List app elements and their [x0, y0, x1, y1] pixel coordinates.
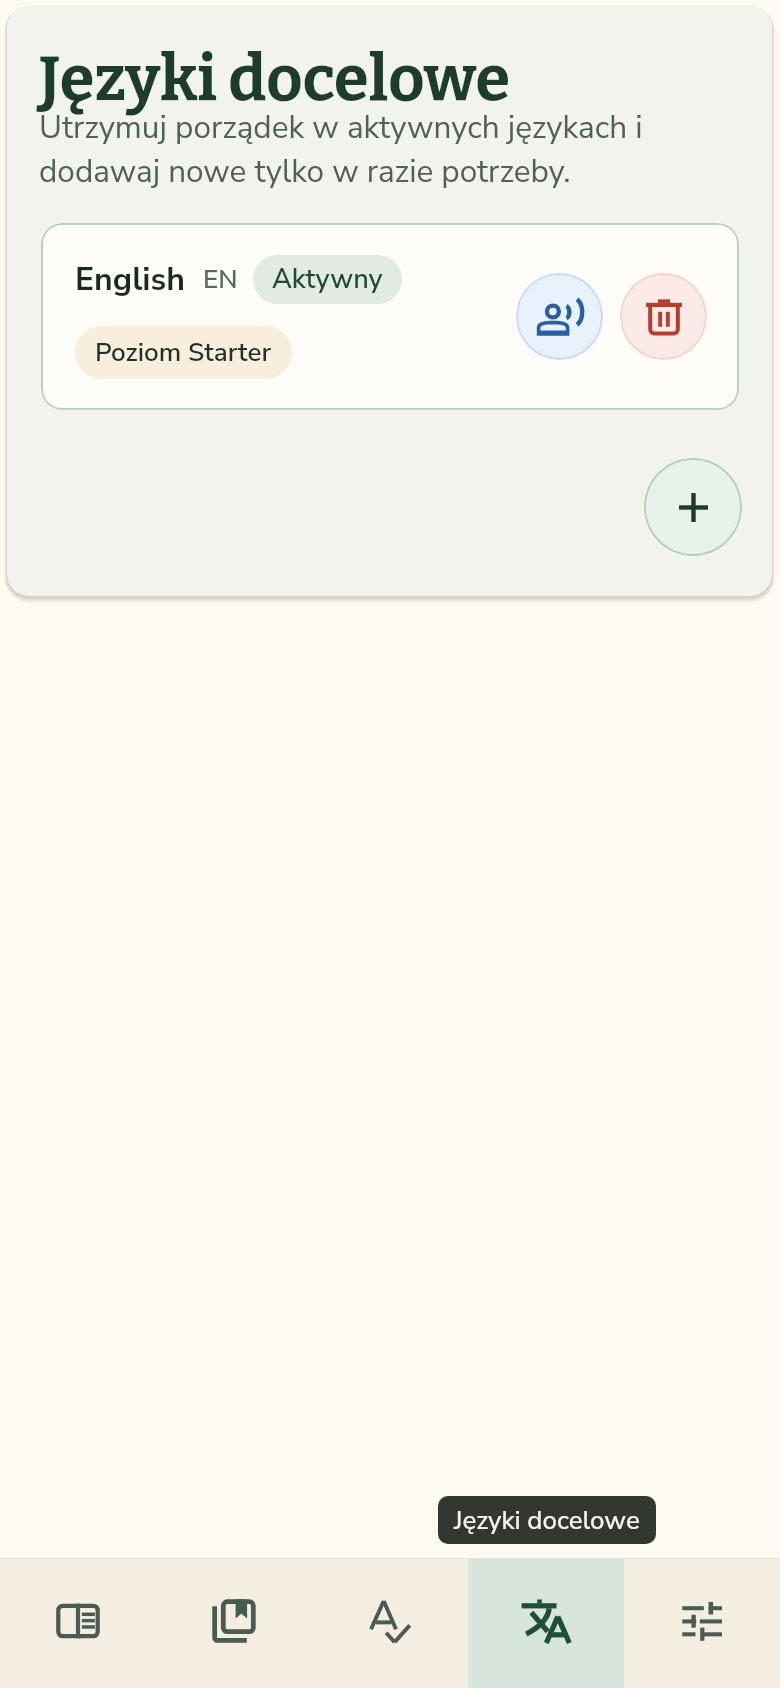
button[interactable]: Języki docelowe — [438, 1496, 656, 1544]
button[interactable]: English — [41, 223, 739, 410]
button[interactable]: Usuń — [620, 273, 707, 360]
button[interactable]: Dodaj język — [644, 458, 742, 556]
staticText: Języki docelowe — [39, 42, 511, 118]
button[interactable]: Słownictwo — [312, 1559, 468, 1688]
staticText: Poziom Starter — [95, 335, 272, 370]
button[interactable]: Ustawienia — [624, 1559, 780, 1688]
staticText: Języki docelowe — [454, 1503, 640, 1538]
button[interactable]: Języki docelowe — [468, 1559, 624, 1688]
button[interactable]: Poziom Starter — [75, 326, 292, 379]
staticText: English — [75, 258, 185, 302]
staticText: Aktywny — [272, 261, 383, 298]
button[interactable]: Aktywny — [253, 255, 402, 304]
staticText: Utrzymuj porządek w aktywnych językach i… — [39, 106, 664, 193]
button[interactable]: Wymowa — [516, 273, 603, 360]
staticText: EN — [203, 262, 238, 297]
button[interactable]: Czytanie — [0, 1559, 156, 1688]
button[interactable]: Biblioteka — [156, 1559, 312, 1688]
